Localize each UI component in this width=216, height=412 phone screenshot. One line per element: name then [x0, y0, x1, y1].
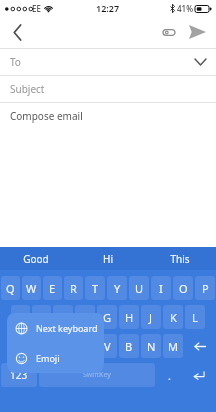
button[interactable]: R [64, 276, 83, 300]
button[interactable]: Space [39, 363, 155, 387]
staticText: J [149, 310, 153, 325]
staticText: A [17, 310, 25, 325]
button[interactable]: B [119, 334, 139, 358]
staticText: G [103, 310, 112, 325]
staticText: W [26, 281, 37, 296]
staticText: . [168, 368, 171, 383]
button[interactable]: W [22, 276, 41, 300]
staticText: EE [32, 3, 41, 14]
button[interactable]: T [85, 276, 105, 300]
staticText: V [104, 339, 111, 354]
button[interactable]: Hi [72, 247, 144, 270]
button[interactable]: Next keyboard [7, 313, 104, 343]
button[interactable]: V [97, 334, 117, 358]
staticText: H [125, 310, 134, 325]
button[interactable]: A [11, 305, 30, 329]
button[interactable]: K [163, 305, 183, 329]
button[interactable]: Shift [1, 334, 30, 358]
staticText: 41% [177, 3, 193, 14]
button[interactable]: Z [32, 334, 51, 358]
staticText: D [59, 310, 68, 325]
staticText: Y [114, 281, 121, 296]
button[interactable]: X [53, 334, 73, 358]
staticText: B [125, 339, 133, 354]
button[interactable]: This [144, 247, 216, 270]
button[interactable]: To [0, 49, 216, 75]
staticText: K [170, 310, 177, 325]
staticText: Emoji [36, 352, 60, 364]
button[interactable]: Q [1, 276, 20, 300]
button[interactable]: U [129, 276, 149, 300]
button[interactable]: Y [107, 276, 127, 300]
button[interactable]: D [53, 305, 73, 329]
staticText: Good [23, 252, 49, 266]
staticText: E [49, 281, 56, 296]
staticText: I [159, 281, 163, 296]
button[interactable]: Backspace [185, 334, 215, 358]
staticText: S [38, 310, 45, 325]
staticText: O [179, 281, 188, 296]
button[interactable]: L [185, 305, 205, 329]
button[interactable]: S [32, 305, 51, 329]
button[interactable]: Return [183, 363, 215, 387]
staticText: F [82, 310, 88, 325]
staticText: L [192, 310, 198, 325]
button[interactable]: F [75, 305, 95, 329]
staticText: T [92, 281, 99, 296]
button[interactable]: Emoji [7, 343, 104, 373]
button[interactable]: Subject [0, 76, 216, 102]
staticText: Next keyboard [36, 322, 98, 334]
button[interactable]: H [119, 305, 139, 329]
button[interactable]: N [141, 334, 161, 358]
staticText: Subject [10, 82, 45, 96]
staticText: Q [6, 281, 15, 296]
button[interactable]: E [43, 276, 62, 300]
button[interactable]: Period [157, 363, 181, 387]
staticText: This [170, 252, 190, 266]
button[interactable]: Attach file [156, 19, 182, 45]
button[interactable]: P [195, 276, 215, 300]
button[interactable]: G [97, 305, 117, 329]
staticText: P [202, 281, 209, 296]
button[interactable]: I [151, 276, 171, 300]
staticText: Hi [103, 252, 113, 266]
button[interactable]: Compose email [0, 103, 216, 129]
button[interactable]: Back [3, 18, 31, 46]
button[interactable]: J [141, 305, 161, 329]
staticText: N [147, 339, 156, 354]
button[interactable]: Send [183, 18, 211, 46]
staticText: To [10, 55, 21, 69]
staticText: Compose email [10, 109, 83, 123]
staticText: U [135, 281, 144, 296]
staticText: SwiftKey [83, 370, 111, 380]
button[interactable]: 123 [1, 363, 37, 387]
staticText: 12:27 [96, 2, 120, 14]
button[interactable]: O [173, 276, 193, 300]
staticText: 123 [10, 368, 28, 382]
staticText: R [70, 281, 77, 296]
button[interactable]: Good [0, 247, 72, 270]
button[interactable]: M [163, 334, 183, 358]
staticText: M [168, 339, 178, 354]
